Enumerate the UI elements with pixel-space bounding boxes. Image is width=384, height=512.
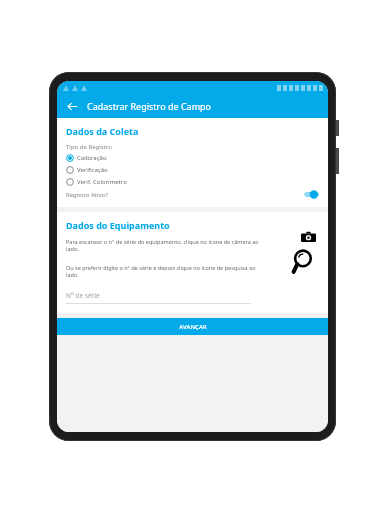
button[interactable]: Verif. Colorímetro bbox=[66, 178, 127, 186]
staticText: AVANÇAR bbox=[179, 323, 207, 331]
button[interactable]: AVANÇAR bbox=[57, 318, 328, 335]
staticText: Para escanear o n° de série do equipamen… bbox=[66, 238, 263, 252]
staticText: Registro Ativo? bbox=[66, 191, 108, 199]
button[interactable]: Pesquisar bbox=[289, 246, 319, 276]
staticText: Calibração bbox=[77, 154, 107, 162]
staticText: Verificação bbox=[77, 166, 108, 174]
staticText: Ou se preferir digite o n° de série e de… bbox=[66, 264, 263, 278]
staticText: Verif. Colorímetro bbox=[77, 178, 127, 186]
button[interactable]: Calibração bbox=[66, 154, 107, 162]
staticText: N° de série bbox=[66, 291, 100, 300]
staticText: Tipo de Registro bbox=[66, 143, 112, 151]
staticText: Dados do Equipamento bbox=[66, 219, 170, 231]
staticText: Cadastrar Registro de Campo bbox=[87, 100, 212, 112]
staticText: Dados da Coleta bbox=[66, 125, 139, 137]
button[interactable]: Verificação bbox=[66, 166, 108, 174]
button[interactable]: Registro Ativo? bbox=[66, 190, 319, 199]
button[interactable]: Escanear com a câmera bbox=[299, 227, 317, 245]
button[interactable]: Back bbox=[63, 97, 81, 115]
